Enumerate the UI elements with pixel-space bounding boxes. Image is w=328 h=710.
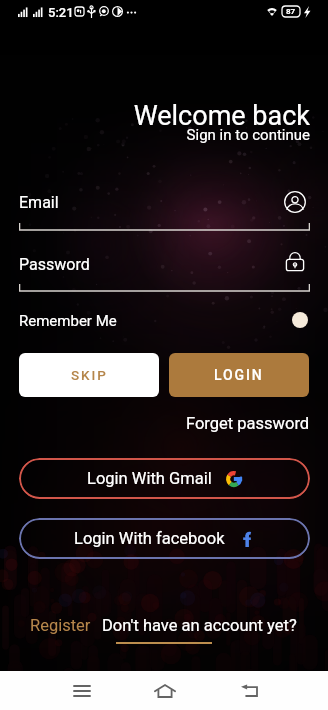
staticText: Don't have an account yet? xyxy=(102,616,297,635)
button[interactable]: Forget password xyxy=(186,414,310,433)
button[interactable]: Register xyxy=(30,616,91,635)
button[interactable]: Login With Gmail xyxy=(19,458,310,499)
staticText: Login With facebook xyxy=(74,529,225,548)
button[interactable]: Account xyxy=(284,191,306,213)
staticText: Password xyxy=(19,255,90,274)
staticText: LOGIN xyxy=(214,367,264,383)
staticText: 87 xyxy=(286,7,296,16)
staticText: Remember Me xyxy=(19,312,117,330)
staticText: Sign in to continue xyxy=(0,126,310,144)
staticText: Login With Gmail xyxy=(87,469,212,488)
button[interactable]: Recent apps xyxy=(62,675,102,706)
button[interactable]: Home xyxy=(144,674,185,707)
staticText: SKIP xyxy=(71,367,108,383)
button[interactable]: SKIP xyxy=(19,353,159,397)
staticText: 5:21 xyxy=(48,5,74,20)
staticText: Welcome back xyxy=(0,100,310,132)
button[interactable]: LOGIN xyxy=(169,353,309,397)
button[interactable]: Login With facebook xyxy=(19,518,310,559)
staticText: Email xyxy=(19,193,59,212)
button[interactable]: Show password xyxy=(285,251,305,271)
button[interactable]: Back xyxy=(229,674,270,707)
button[interactable]: Remember me xyxy=(286,306,314,334)
